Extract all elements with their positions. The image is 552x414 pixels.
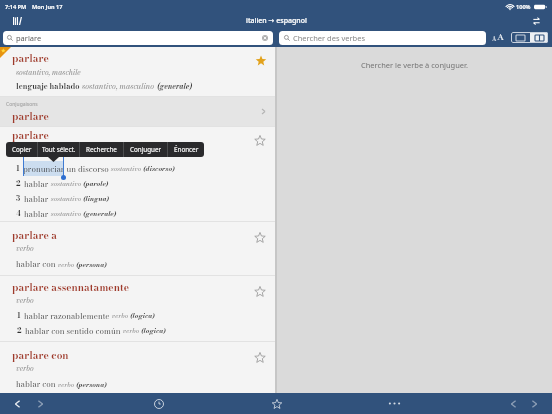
staticText: sostantivo [109, 163, 143, 174]
button[interactable]: Recherche [80, 142, 123, 157]
staticText: parlare [12, 51, 49, 66]
staticText: hablar [24, 208, 49, 220]
staticText: parlare assennatamente [12, 280, 129, 295]
button[interactable]: parlare [3, 31, 273, 45]
staticText: italien → espagnol [246, 16, 307, 26]
button[interactable]: Swap languages [529, 14, 543, 28]
staticText: parlare a [12, 228, 58, 243]
button[interactable]: Add to favourites [253, 133, 267, 147]
staticText: (generale) [83, 208, 117, 219]
staticText: (parole) [83, 178, 109, 189]
staticText: (logica) [130, 310, 155, 321]
staticText: A [497, 30, 504, 44]
button[interactable]: Dictionaries [10, 14, 24, 28]
staticText: 3 [16, 193, 21, 204]
staticText: 2 [17, 325, 22, 336]
staticText: 2 [16, 178, 21, 189]
staticText: 1 [17, 310, 21, 321]
staticText: Chercher des verbes [293, 33, 366, 43]
button[interactable]: Forward [32, 395, 49, 412]
staticText: Chercher le verbe à conjuguer. [361, 60, 468, 70]
staticText: Énoncer [174, 145, 199, 154]
button[interactable]: Conjuguer [124, 142, 167, 157]
button[interactable]: Add to favourites [254, 53, 268, 67]
button[interactable]: Favourites [268, 395, 285, 412]
button[interactable]: Text size [492, 29, 508, 47]
staticText: sostantivo [49, 193, 83, 204]
staticText: (logica) [141, 325, 166, 336]
staticText: (generale) [157, 81, 193, 92]
staticText: (persona) [76, 259, 107, 270]
button[interactable]: Chercher des verbes [279, 31, 486, 45]
staticText: sostantivo [49, 208, 83, 219]
staticText: (persona) [76, 379, 107, 390]
staticText: Copier [12, 145, 32, 154]
staticText: Conjuguer [130, 145, 162, 154]
staticText: parlare [12, 128, 49, 143]
staticText: parlare con [12, 348, 69, 363]
staticText: 100% [516, 3, 531, 11]
button[interactable]: parlare assennatamente [0, 276, 275, 341]
staticText: pronunciar un discorso [23, 163, 109, 175]
staticText: verbo [16, 363, 34, 374]
staticText: Tout sélect. [42, 145, 76, 154]
staticText: verbo [110, 310, 130, 321]
button[interactable]: Next result [526, 395, 543, 412]
staticText: verbo [121, 325, 141, 336]
button[interactable]: Add to favourites [253, 350, 267, 364]
staticText: sostantivo, masculino [82, 80, 157, 92]
staticText: hablar con [16, 258, 56, 270]
button[interactable]: Tout sélect. [38, 142, 79, 157]
button[interactable]: italien → espagnol [240, 14, 313, 28]
staticText: verbo [16, 295, 34, 306]
button[interactable]: parlare a [0, 222, 275, 275]
button[interactable]: Add to favourites [253, 284, 267, 298]
staticText: Conjugaisons [6, 101, 38, 108]
staticText: 7:14 PM [5, 3, 27, 11]
staticText: (discorso) [143, 163, 175, 174]
button[interactable]: Énoncer [168, 142, 204, 157]
staticText: parlare [12, 109, 49, 124]
staticText: 1 [16, 163, 20, 174]
staticText: hablar razonablemente [24, 310, 110, 322]
button[interactable]: Single pane [511, 32, 530, 43]
staticText: Mon Jun 17 [32, 3, 63, 11]
staticText: verbo [56, 379, 76, 390]
staticText: (lingua) [83, 193, 110, 204]
button[interactable]: Conjugaisons [0, 97, 275, 126]
staticText: Recherche [86, 145, 117, 154]
staticText: hablar con [16, 378, 56, 390]
button[interactable]: Clear search [259, 32, 271, 44]
button[interactable]: parlare [0, 127, 275, 221]
button[interactable]: Copier [6, 142, 37, 157]
button[interactable]: More options [386, 395, 403, 412]
staticText: sostantivo, maschile [16, 67, 81, 78]
button[interactable]: Back [9, 395, 26, 412]
staticText: 4 [16, 208, 21, 219]
staticText: hablar [24, 178, 49, 190]
staticText: sostantivo [49, 178, 83, 189]
staticText: verbo [56, 259, 76, 270]
button[interactable]: parlare [0, 47, 275, 96]
button[interactable]: Split pane [530, 32, 548, 43]
staticText: verbo [16, 243, 34, 254]
button[interactable]: Previous result [505, 395, 522, 412]
button[interactable]: History [150, 395, 167, 412]
staticText: hablar [24, 193, 49, 205]
staticText: lenguaje hablado [16, 81, 80, 92]
button[interactable]: Add to favourites [253, 230, 267, 244]
button[interactable]: parlare con [0, 342, 275, 393]
staticText: parlare [16, 33, 42, 43]
staticText: A [492, 35, 497, 43]
staticText: hablar con sentido común [25, 325, 121, 337]
